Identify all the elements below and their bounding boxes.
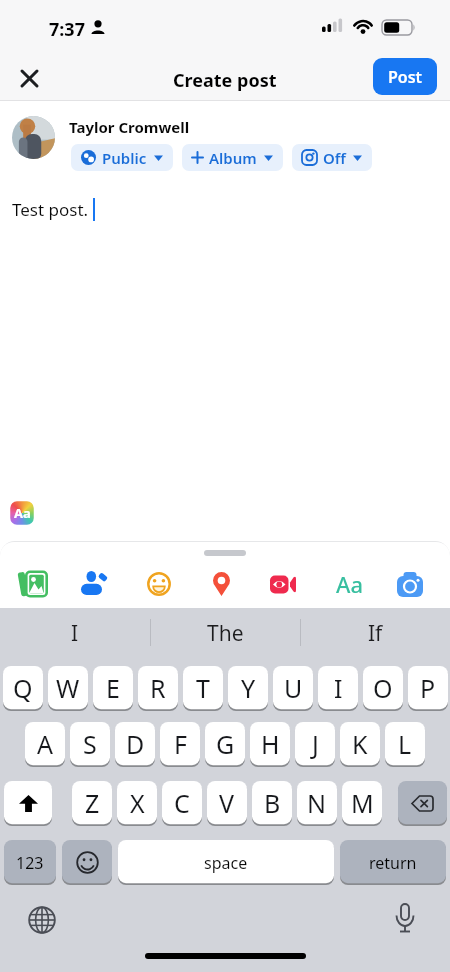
button[interactable]: N xyxy=(297,781,337,826)
staticText: The xyxy=(207,619,244,648)
staticText: E xyxy=(106,671,120,705)
button[interactable]: W xyxy=(48,666,88,711)
staticText: F xyxy=(174,727,187,761)
button[interactable]: K xyxy=(340,722,380,767)
staticText: Taylor Cromwell xyxy=(69,117,190,137)
staticText: Test post. xyxy=(12,198,89,221)
button[interactable]: X xyxy=(117,781,157,826)
staticText: Off xyxy=(323,148,346,168)
staticText: X xyxy=(130,786,145,820)
button[interactable]: Album xyxy=(182,144,283,171)
staticText: Aa xyxy=(336,569,363,599)
staticText: J xyxy=(312,727,319,761)
staticText: H xyxy=(261,727,280,761)
button[interactable] xyxy=(201,567,241,601)
button[interactable]: Z xyxy=(72,781,112,826)
staticText: N xyxy=(307,786,327,820)
button[interactable] xyxy=(13,567,53,601)
button[interactable]: If xyxy=(320,618,430,648)
staticText: C xyxy=(174,786,190,820)
staticText: S xyxy=(83,727,97,761)
staticText: O xyxy=(373,671,393,705)
staticText: Public xyxy=(102,148,147,168)
button[interactable]: P xyxy=(408,666,448,711)
staticText: W xyxy=(56,671,80,705)
button[interactable]: A xyxy=(25,722,65,767)
staticText: Y xyxy=(241,671,256,705)
button[interactable]: D xyxy=(115,722,155,767)
staticText: D xyxy=(126,727,145,761)
button[interactable]: L xyxy=(385,722,425,767)
button[interactable]: T xyxy=(183,666,223,711)
staticText: I xyxy=(71,619,79,648)
staticText: Z xyxy=(85,786,100,820)
button[interactable]: J xyxy=(295,722,335,767)
button[interactable]: E xyxy=(93,666,133,711)
button[interactable] xyxy=(382,896,428,944)
staticText: Q xyxy=(13,671,33,705)
staticText: space xyxy=(204,852,248,874)
staticText: I xyxy=(334,671,343,705)
button[interactable]: U xyxy=(273,666,313,711)
staticText: 7:37 xyxy=(49,17,85,42)
staticText: return xyxy=(369,852,417,874)
staticText: Create post xyxy=(173,68,277,93)
button[interactable] xyxy=(4,781,52,826)
button[interactable]: Post xyxy=(373,58,437,95)
staticText: If xyxy=(368,619,383,648)
button[interactable]: O xyxy=(363,666,403,711)
staticText: 123 xyxy=(16,852,44,874)
button[interactable] xyxy=(390,567,430,601)
button[interactable]: V xyxy=(207,781,247,826)
staticText: T xyxy=(196,671,210,705)
staticText: G xyxy=(216,727,235,761)
button[interactable]: M xyxy=(342,781,382,826)
button[interactable]: G xyxy=(205,722,245,767)
button[interactable]: F xyxy=(160,722,200,767)
staticText: P xyxy=(420,671,436,705)
staticText: L xyxy=(398,727,412,761)
staticText: B xyxy=(264,786,281,820)
button[interactable]: B xyxy=(252,781,292,826)
staticText: Album xyxy=(209,148,257,168)
staticText: U xyxy=(284,671,303,705)
button[interactable]: I xyxy=(318,666,358,711)
button[interactable]: R xyxy=(138,666,178,711)
staticText: M xyxy=(351,786,374,820)
button[interactable]: C xyxy=(162,781,202,826)
staticText: V xyxy=(219,786,235,820)
button[interactable]: Y xyxy=(228,666,268,711)
button[interactable] xyxy=(139,567,179,601)
staticText: Aa xyxy=(14,504,31,522)
button[interactable]: I xyxy=(20,618,130,648)
button[interactable]: Q xyxy=(3,666,43,711)
button[interactable] xyxy=(73,567,113,601)
button[interactable]: space xyxy=(118,840,334,885)
button[interactable]: Aa xyxy=(329,567,369,601)
staticText: R xyxy=(150,671,166,705)
staticText: A xyxy=(37,727,53,761)
button[interactable] xyxy=(263,567,303,601)
staticText: K xyxy=(352,727,368,761)
button[interactable] xyxy=(398,781,447,826)
button[interactable]: 123 xyxy=(4,840,56,885)
button[interactable]: Public xyxy=(71,144,173,171)
button[interactable]: The xyxy=(170,618,280,648)
button[interactable]: Off xyxy=(292,144,372,171)
staticText: Post xyxy=(388,66,423,88)
button[interactable] xyxy=(10,59,48,97)
button[interactable] xyxy=(18,896,66,944)
button[interactable]: return xyxy=(340,840,446,885)
button[interactable] xyxy=(62,840,112,885)
button[interactable]: H xyxy=(250,722,290,767)
button[interactable]: Aa xyxy=(9,500,35,526)
button[interactable]: S xyxy=(70,722,110,767)
